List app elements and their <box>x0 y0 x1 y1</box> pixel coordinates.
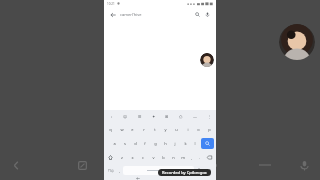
button[interactable]: Back <box>108 10 117 19</box>
button[interactable]: v <box>148 152 158 162</box>
staticText: , <box>119 168 121 173</box>
button[interactable]: Keyboard tool <box>176 112 185 121</box>
button[interactable]: p <box>204 124 215 134</box>
button[interactable]: Search <box>193 10 202 19</box>
staticText: . <box>199 155 201 160</box>
staticText: ▪ ▪ ▪ <box>187 2 195 6</box>
button[interactable]: r <box>138 124 149 134</box>
staticText: q <box>109 127 112 132</box>
button[interactable]: a <box>109 138 120 148</box>
button[interactable]: n <box>168 152 178 162</box>
staticText: ☰ <box>138 114 142 119</box>
button[interactable]: d <box>130 138 140 148</box>
staticText: ✦ <box>152 114 156 119</box>
button[interactable]: j <box>170 138 180 148</box>
staticText: b <box>162 155 165 160</box>
button[interactable]: Back navigation <box>135 177 141 180</box>
button[interactable]: b <box>158 152 168 162</box>
staticText: l <box>194 141 196 146</box>
staticText: y <box>164 127 167 132</box>
button[interactable]: Space <box>123 166 194 175</box>
button[interactable]: u <box>171 124 182 134</box>
staticText: p <box>208 127 211 132</box>
button[interactable]: k <box>180 138 190 148</box>
staticText: z <box>121 155 123 160</box>
button[interactable]: l <box>190 138 200 148</box>
staticText: ⎙ <box>179 115 183 119</box>
staticText: ☺ <box>123 114 128 119</box>
staticText: a <box>113 141 116 146</box>
button[interactable]: e <box>127 124 138 134</box>
button[interactable]: Enter <box>201 138 214 149</box>
button[interactable]: w <box>116 124 127 134</box>
staticText: x <box>131 155 134 160</box>
button[interactable]: Symbols <box>106 166 117 175</box>
button[interactable]: Voice search <box>203 10 212 19</box>
staticText: r <box>143 127 145 132</box>
button[interactable]: h <box>160 138 170 148</box>
staticText: , <box>191 155 193 160</box>
staticText: f <box>144 141 146 146</box>
staticText: d <box>134 141 137 146</box>
button[interactable]: Captions <box>134 155 168 175</box>
button[interactable]: Next <box>204 155 224 175</box>
button[interactable]: More <box>254 155 276 175</box>
button[interactable]: Screen rotate <box>72 155 92 175</box>
button[interactable]: Emoji <box>194 166 203 175</box>
button[interactable]: camerl'hive <box>120 7 193 21</box>
staticText: ‹ <box>111 114 113 119</box>
button[interactable]: x <box>127 152 138 162</box>
staticText: t <box>154 127 156 132</box>
button[interactable]: Keyboard tool <box>107 112 116 121</box>
button[interactable]: Comma <box>188 152 196 163</box>
button[interactable]: Chat head <box>200 53 214 67</box>
staticText: — <box>193 114 197 119</box>
button[interactable]: Keyboard tool <box>121 112 130 121</box>
staticText: i <box>187 127 189 132</box>
button[interactable]: Keyboard tool <box>162 112 171 121</box>
button[interactable]: Switch input <box>203 166 214 175</box>
button[interactable]: m <box>178 152 188 162</box>
staticText: ⋮ <box>207 114 211 119</box>
staticText: h <box>164 141 167 146</box>
button[interactable]: i <box>182 124 193 134</box>
staticText: v <box>152 155 155 160</box>
staticText: u <box>175 127 178 132</box>
staticText: g <box>154 141 157 146</box>
button[interactable]: Previous <box>6 155 26 175</box>
button[interactable]: Shift <box>105 152 116 163</box>
staticText: e <box>131 127 134 132</box>
button[interactable]: s <box>120 138 130 148</box>
staticText: j <box>174 141 176 146</box>
button[interactable]: Keyboard tool <box>149 112 158 121</box>
button[interactable]: t <box>149 124 160 134</box>
button[interactable]: Keyboard tool <box>135 112 144 121</box>
staticText: n <box>172 155 175 160</box>
staticText: OMF <box>143 160 159 170</box>
button[interactable]: c <box>138 152 148 162</box>
button[interactable]: y <box>160 124 171 134</box>
button[interactable]: Microphone <box>294 155 314 175</box>
button[interactable]: Keyboard tool <box>190 112 199 121</box>
staticText: s <box>124 141 126 146</box>
staticText: EN <box>207 169 211 173</box>
staticText: Recorded by Cptbrogox <box>162 170 207 175</box>
button[interactable]: o <box>193 124 204 134</box>
button[interactable]: f <box>140 138 150 148</box>
button[interactable]: Profile picture <box>279 24 315 60</box>
staticText: w <box>120 127 124 132</box>
button[interactable]: Keyboard tool <box>204 112 213 121</box>
staticText: m <box>181 155 185 160</box>
button[interactable]: Comma key <box>117 166 123 175</box>
staticText: ?1☺ <box>108 169 115 173</box>
button[interactable]: g <box>150 138 160 148</box>
staticText: c <box>142 155 144 160</box>
staticText: ⊞ <box>165 114 169 119</box>
button[interactable]: q <box>105 124 116 134</box>
staticText: 10:21 <box>107 2 115 6</box>
staticText: camerl'hive <box>120 12 142 17</box>
button[interactable]: z <box>116 152 127 162</box>
button[interactable]: Recorded by Cptbrogox <box>158 169 211 176</box>
button[interactable]: Backspace <box>204 152 215 163</box>
